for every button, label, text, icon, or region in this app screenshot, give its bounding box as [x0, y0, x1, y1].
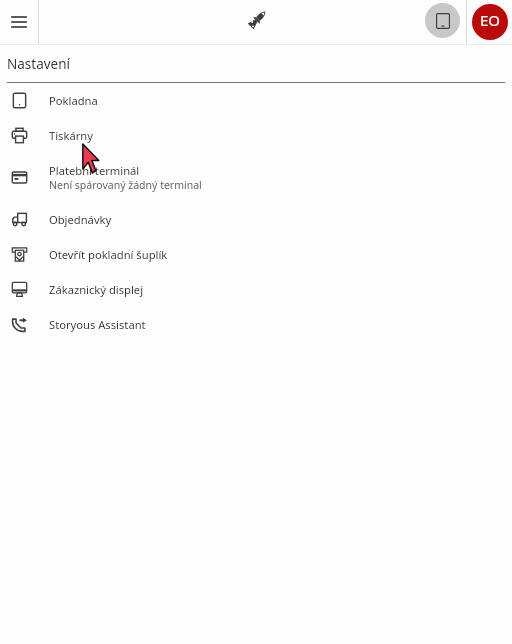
button[interactable]: Otevřít pokladní šuplík: [0, 237, 512, 272]
staticText: Tiskárny: [49, 128, 93, 143]
staticText: Nastavení: [7, 55, 71, 73]
button[interactable]: Menu: [0, 0, 38, 44]
button[interactable]: Device: [425, 3, 460, 38]
staticText: Zákaznický displej: [49, 282, 144, 297]
staticText: Otevřít pokladní šuplík: [49, 247, 168, 262]
button[interactable]: EO: [468, 0, 509, 44]
button[interactable]: Storyous Assistant: [0, 307, 512, 342]
button[interactable]: Pokladna: [0, 83, 512, 118]
button[interactable]: Platební terminál: [0, 153, 512, 202]
staticText: Objednávky: [49, 212, 112, 227]
button[interactable]: Zákaznický displej: [0, 272, 512, 307]
button[interactable]: Objednávky: [0, 202, 512, 237]
button[interactable]: Tiskárny: [0, 118, 512, 153]
staticText: Platební terminál: [49, 163, 140, 178]
staticText: Storyous Assistant: [49, 317, 146, 332]
staticText: Není spárovaný žádný terminal: [49, 178, 202, 192]
staticText: EO: [480, 10, 501, 30]
staticText: Pokladna: [49, 93, 98, 108]
